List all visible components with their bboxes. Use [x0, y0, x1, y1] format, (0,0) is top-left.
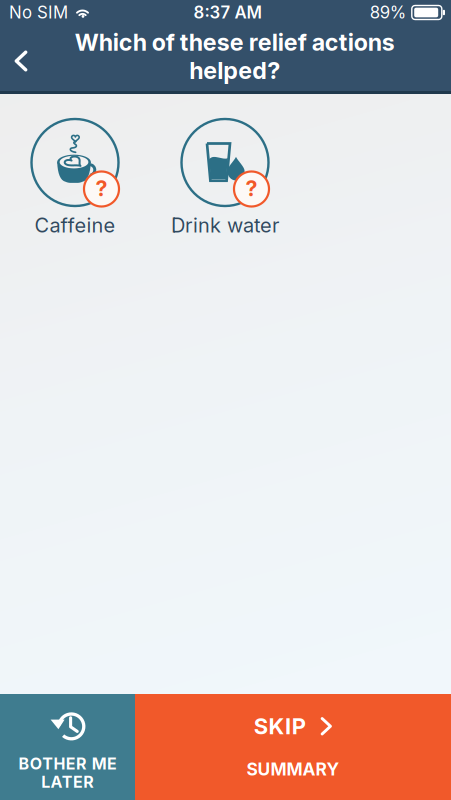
staticText: No SIM: [9, 2, 68, 23]
button[interactable]: ?: [150, 119, 300, 254]
staticText: Which of these relief actions helped?: [74, 28, 394, 85]
staticText: BOTHER ME LATER: [18, 754, 117, 792]
button[interactable]: SKIP: [135, 694, 451, 800]
button[interactable]: BOTHER ME LATER: [0, 694, 135, 800]
button[interactable]: Back: [0, 27, 42, 89]
staticText: 8:37 AM: [193, 2, 261, 23]
staticText: Drink water: [171, 213, 279, 237]
staticText: ?: [245, 176, 257, 201]
staticText: SKIP: [254, 713, 306, 740]
staticText: 89%: [370, 2, 406, 23]
staticText: Caffeine: [34, 213, 115, 237]
staticText: ?: [95, 176, 107, 201]
button[interactable]: ?: [0, 119, 150, 254]
staticText: SUMMARY: [246, 759, 339, 780]
